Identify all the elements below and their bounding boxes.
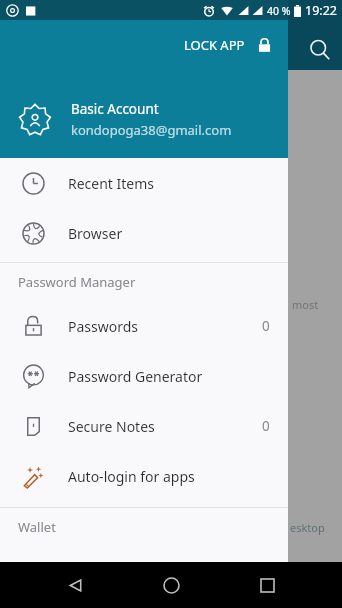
staticText: most [292, 297, 319, 312]
staticText: 0 [262, 317, 270, 335]
button[interactable]: Home [154, 568, 188, 602]
button[interactable]: Recents [250, 568, 284, 602]
staticText: Recent Items [68, 174, 270, 193]
button[interactable]: Auto-login for apps [0, 451, 288, 501]
staticText: Secure Notes [68, 417, 262, 436]
staticText: LOCK APP [184, 36, 245, 54]
button[interactable]: Password Generator [0, 351, 288, 401]
button[interactable]: Search [300, 30, 340, 70]
staticText: Password Manager [18, 273, 136, 291]
button[interactable]: Back [58, 568, 92, 602]
staticText: Wallet [18, 518, 56, 536]
button[interactable]: Browser [0, 208, 288, 258]
staticText: 0 [262, 417, 270, 435]
staticText: Password Generator [68, 367, 270, 386]
staticText: Basic Account [71, 100, 159, 118]
staticText: Auto-login for apps [68, 467, 270, 486]
staticText: Passwords [68, 317, 262, 336]
staticText: 40 % [267, 4, 291, 18]
staticText: kondopoga38@gmail.com [71, 121, 232, 139]
button[interactable]: Secure Notes [0, 401, 288, 451]
button[interactable]: Basic Account [0, 96, 288, 143]
button[interactable]: LOCK APP [178, 30, 278, 60]
button[interactable]: Recent Items [0, 158, 288, 208]
button[interactable]: Passwords [0, 301, 288, 351]
staticText: Browser [68, 224, 270, 243]
staticText: esktop [290, 520, 325, 535]
staticText: 19:22 [305, 2, 337, 19]
